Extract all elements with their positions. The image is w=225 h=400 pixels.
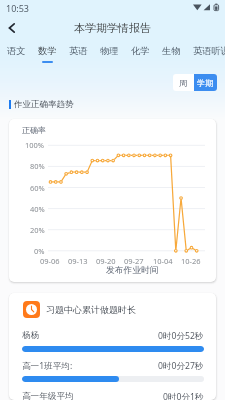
staticText: 生物: [162, 45, 181, 57]
button[interactable]: 英语: [69, 40, 88, 68]
staticText: 09-06: [40, 256, 60, 266]
staticText: 正确率: [22, 125, 46, 135]
button[interactable]: 学期: [194, 74, 217, 91]
staticText: 0时0分52秒: [158, 330, 204, 342]
staticText: 80%: [30, 161, 45, 171]
staticText: 20%: [30, 225, 45, 235]
staticText: 10-26: [181, 256, 201, 266]
button[interactable]: 英语听说: [193, 40, 225, 68]
staticText: 40%: [30, 204, 45, 214]
button[interactable]: 化学: [131, 40, 150, 68]
staticText: 09-13: [68, 256, 88, 266]
staticText: 化学: [131, 45, 150, 57]
button[interactable]: 语文: [7, 40, 26, 68]
staticText: 数学: [38, 45, 57, 57]
staticText: 0%: [34, 246, 45, 256]
staticText: 10-04: [153, 256, 173, 266]
staticText: 100%: [25, 140, 45, 150]
staticText: 学期: [197, 78, 214, 88]
staticText: 英语听说: [193, 45, 225, 57]
staticText: 作业正确率趋势: [14, 99, 74, 110]
staticText: 10:53: [6, 2, 30, 14]
button[interactable]: 周: [173, 74, 194, 91]
staticText: 本学期学情报告: [74, 21, 151, 35]
staticText: 语文: [7, 45, 26, 57]
staticText: 英语: [69, 45, 88, 57]
staticText: 09-20: [96, 256, 116, 266]
staticText: 60%: [30, 183, 45, 193]
staticText: 周: [179, 78, 188, 88]
staticText: 习题中心累计做题时长: [46, 304, 136, 315]
staticText: 杨杨: [22, 330, 40, 341]
staticText: 0时0分27秒: [158, 360, 204, 372]
button[interactable]: Back: [0, 16, 24, 40]
staticText: 0时0分1秒: [163, 391, 204, 400]
button[interactable]: 物理: [100, 40, 119, 68]
staticText: 高一年级平均: [22, 391, 74, 400]
staticText: 09-27: [124, 256, 144, 266]
staticText: 发布作业时间: [106, 265, 159, 276]
staticText: 物理: [100, 45, 119, 57]
button[interactable]: 数学: [38, 40, 57, 68]
button[interactable]: 生物: [162, 40, 181, 68]
staticText: 高一1班平均:: [22, 360, 73, 372]
